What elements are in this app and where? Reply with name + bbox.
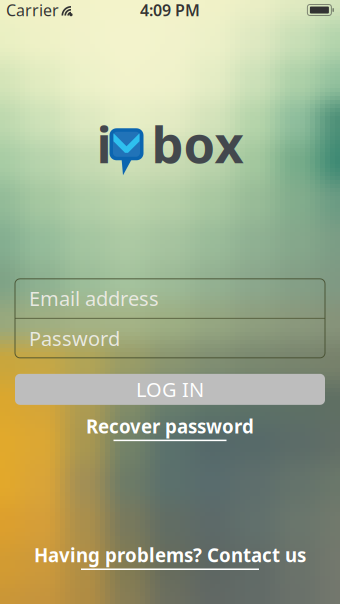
staticText: 4:09 PM [140,0,200,21]
staticText: i [96,110,111,177]
staticText: Recover password [86,414,254,439]
staticText: Carrier [6,0,59,21]
button[interactable]: Recover password [86,414,254,441]
staticText: Password [29,325,120,352]
staticText: LOG IN [136,376,204,403]
staticText: box [151,110,243,177]
button[interactable]: LOG IN [0,374,340,405]
staticText: Having problems? Contact us [34,543,306,567]
staticText: Email address [29,285,159,312]
button[interactable]: Having problems? Contact us [34,543,306,570]
